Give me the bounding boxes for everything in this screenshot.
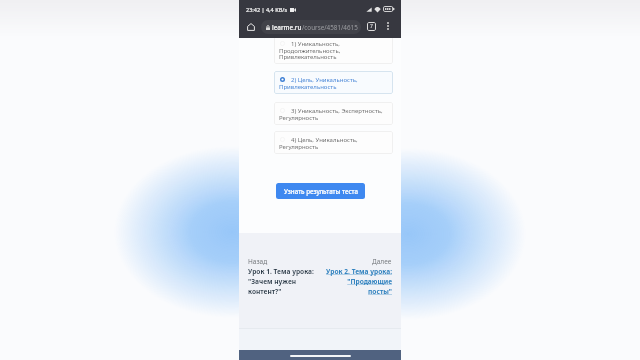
button[interactable]: 4) Цель, Уникальность, Регулярность (274, 131, 393, 154)
staticText: 4) Цель, Уникальность, Регулярность (279, 136, 358, 151)
staticText: /course/4581/4615 (302, 23, 358, 32)
staticText: Узнать результаты теста (284, 187, 358, 195)
staticText: 1) Уникальность, Продолжительность, Прив… (279, 40, 341, 61)
button[interactable]: Урок 2. Тема урока: "Продающие посты" (322, 267, 392, 296)
staticText: Далее (372, 257, 392, 266)
staticText: learme.ru (272, 23, 302, 32)
staticText: 7 (370, 23, 373, 30)
button[interactable]: learme.ru (261, 20, 361, 34)
button[interactable]: Home (242, 18, 259, 35)
button[interactable]: More options (379, 17, 397, 35)
staticText: 23:42 | 4,4 KB/s (246, 6, 288, 13)
staticText: Урок 2. Тема урока: "Продающие посты" (322, 267, 392, 296)
button[interactable]: Узнать результаты теста (276, 183, 365, 199)
button[interactable]: 3) Уникальность, Экспертность, Регулярно… (274, 102, 393, 125)
staticText: Урок 1. Тема урока: "Зачем нужен контент… (248, 267, 318, 296)
button[interactable]: Tabs (363, 18, 379, 34)
staticText: 3) Уникальность, Экспертность, Регулярно… (279, 107, 383, 122)
staticText: Назад (248, 257, 268, 266)
button[interactable]: Урок 1. Тема урока: "Зачем нужен контент… (248, 267, 318, 296)
button[interactable]: 1) Уникальность, Продолжительность, Прив… (274, 35, 393, 64)
button[interactable]: 2) Цель, Уникальность, Привлекательность (274, 71, 393, 94)
staticText: 2) Цель, Уникальность, Привлекательность (279, 76, 358, 91)
